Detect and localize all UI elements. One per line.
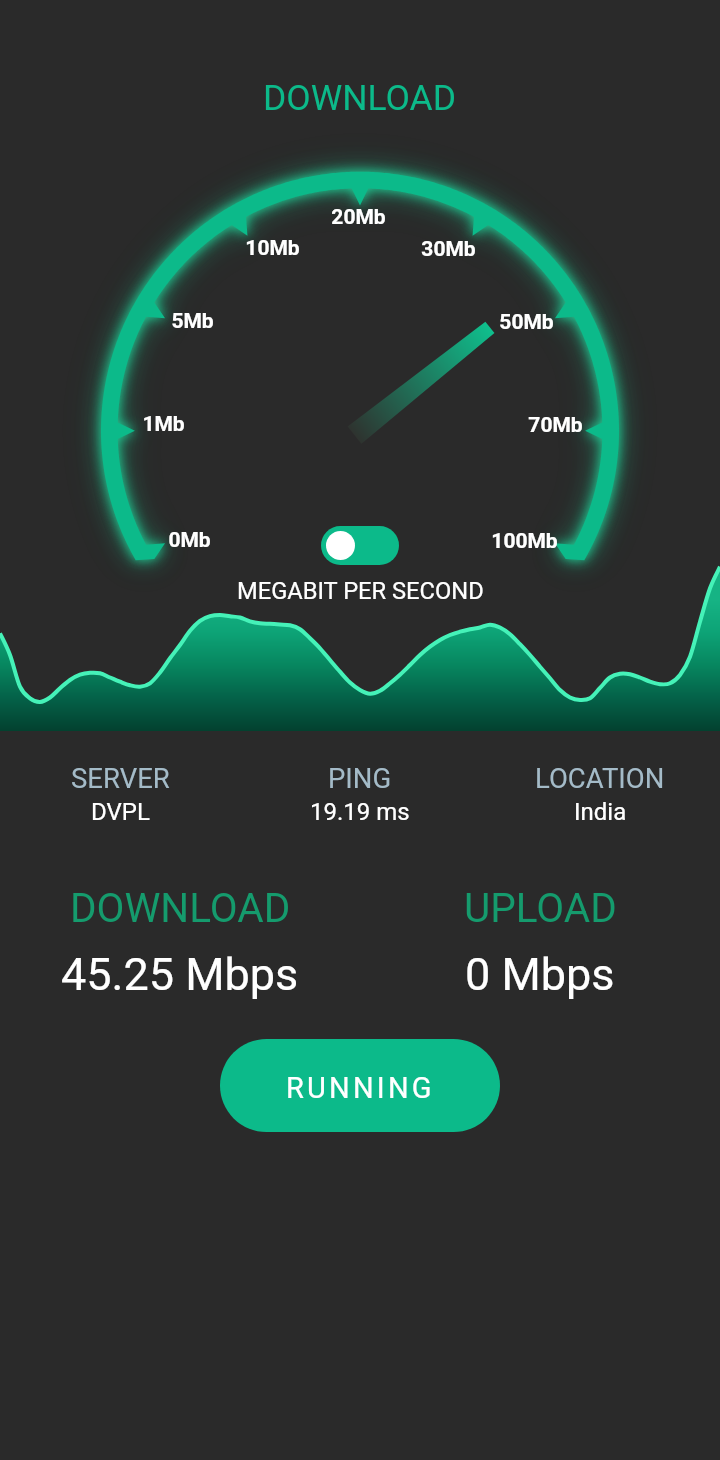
staticText: 19.19 ms (310, 798, 410, 826)
staticText: 70Mb (528, 413, 583, 438)
staticText: PING (328, 762, 392, 794)
staticText: DOWNLOAD (70, 884, 291, 931)
staticText: 1Mb (142, 412, 185, 437)
staticText: MEGABIT PER SECOND (237, 577, 484, 605)
staticText: DVPL (91, 798, 150, 826)
staticText: 0 Mbps (465, 948, 615, 1001)
button[interactable]: Toggle speed unit (321, 526, 399, 565)
staticText: 0Mb (168, 528, 211, 553)
staticText: SERVER (71, 762, 170, 794)
staticText: India (574, 798, 627, 826)
staticText: 20Mb (331, 205, 386, 230)
staticText: DOWNLOAD (263, 77, 457, 119)
staticText: 30Mb (421, 237, 476, 262)
button[interactable]: PING (240, 762, 480, 826)
staticText: 50Mb (499, 310, 554, 335)
staticText: 100Mb (491, 529, 558, 554)
staticText: 45.25 Mbps (61, 948, 299, 1001)
staticText: UPLOAD (464, 884, 617, 931)
staticText: LOCATION (535, 762, 665, 794)
button[interactable]: RUNNING (220, 1039, 500, 1132)
staticText: 5Mb (171, 309, 214, 334)
button[interactable]: LOCATION (480, 762, 720, 826)
staticText: RUNNING (286, 1071, 435, 1105)
staticText: 10Mb (245, 236, 300, 261)
button[interactable]: SERVER (0, 762, 240, 826)
